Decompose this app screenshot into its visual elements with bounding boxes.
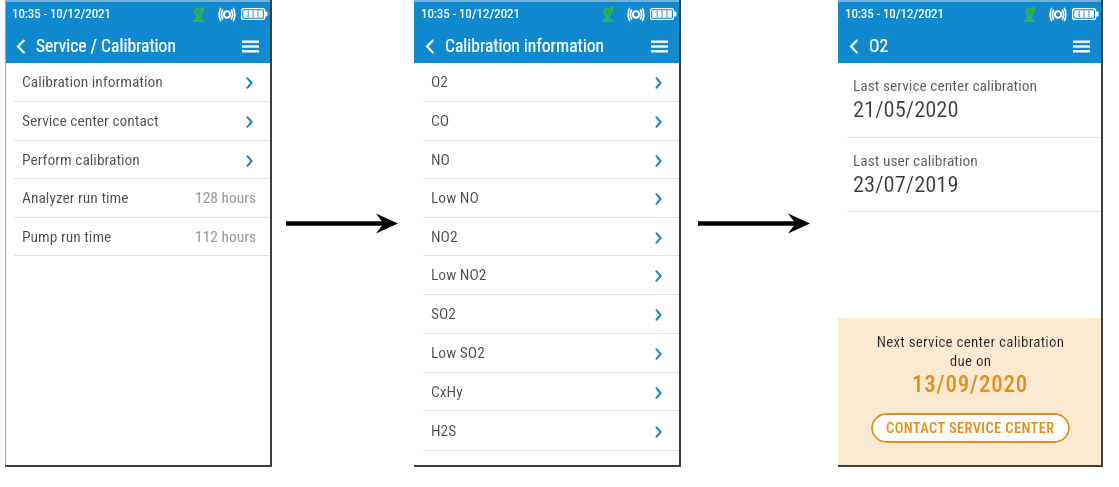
button[interactable]: NO bbox=[414, 141, 681, 178]
staticText: NO2 bbox=[431, 228, 458, 246]
staticText: Last service center calibration bbox=[853, 77, 1038, 95]
button[interactable]: CO bbox=[414, 102, 681, 140]
staticText: Analyzer run time bbox=[22, 189, 129, 207]
staticText: 10:35 - 10/12/2021 bbox=[845, 6, 944, 21]
staticText: Low NO bbox=[431, 189, 479, 207]
button[interactable]: Back bbox=[422, 36, 604, 57]
button[interactable]: Back bbox=[846, 36, 889, 57]
staticText: 21/05/2020 bbox=[853, 96, 959, 122]
button[interactable]: Perform calibration bbox=[5, 141, 272, 178]
staticText: Calibration information bbox=[22, 73, 163, 91]
button[interactable]: Menu bbox=[646, 33, 672, 59]
staticText: Perform calibration bbox=[22, 151, 140, 169]
staticText: CxHy bbox=[431, 383, 463, 401]
staticText: Service / Calibration bbox=[36, 36, 176, 57]
button[interactable]: Service center contact bbox=[5, 102, 272, 140]
staticText: O2 bbox=[869, 36, 889, 57]
button[interactable]: Analyzer run time bbox=[5, 179, 272, 217]
other: Back bbox=[846, 38, 862, 54]
other: Back bbox=[422, 38, 438, 54]
staticText: CONTACT SERVICE CENTER bbox=[886, 420, 1055, 437]
button[interactable]: H2S bbox=[414, 411, 681, 450]
staticText: 23/07/2019 bbox=[853, 171, 959, 197]
button[interactable]: Pump run time bbox=[5, 218, 272, 255]
staticText: 10:35 - 10/12/2021 bbox=[421, 6, 520, 21]
button[interactable]: CONTACT SERVICE CENTER bbox=[871, 413, 1070, 443]
staticText: Service center contact bbox=[22, 112, 159, 130]
button[interactable]: Low NO2 bbox=[414, 256, 681, 294]
button[interactable]: Menu bbox=[1068, 33, 1094, 59]
button[interactable]: Back bbox=[13, 36, 176, 57]
button[interactable]: SO2 bbox=[414, 295, 681, 333]
staticText: Last user calibration bbox=[853, 152, 978, 170]
button[interactable]: Calibration information bbox=[5, 63, 272, 101]
button[interactable]: O2 bbox=[414, 63, 681, 101]
staticText: Low SO2 bbox=[431, 344, 485, 362]
button[interactable]: Menu bbox=[237, 33, 263, 59]
staticText: 112 hours bbox=[195, 228, 257, 246]
button[interactable]: Low NO bbox=[414, 179, 681, 217]
staticText: CO bbox=[431, 112, 450, 130]
staticText: Calibration information bbox=[445, 36, 604, 57]
other: Back bbox=[13, 38, 29, 54]
staticText: Low NO2 bbox=[431, 266, 487, 284]
staticText: 13/09/2020 bbox=[912, 371, 1029, 398]
staticText: O2 bbox=[431, 73, 448, 91]
staticText: Pump run time bbox=[22, 228, 112, 246]
staticText: H2S bbox=[431, 422, 457, 440]
button[interactable]: NO2 bbox=[414, 218, 681, 255]
staticText: NO bbox=[431, 151, 450, 169]
staticText: Next service center calibration due on bbox=[848, 333, 1093, 370]
staticText: SO2 bbox=[431, 305, 457, 323]
button[interactable]: CxHy bbox=[414, 373, 681, 410]
staticText: 128 hours bbox=[195, 189, 257, 207]
staticText: 10:35 - 10/12/2021 bbox=[12, 6, 111, 21]
button[interactable]: Low SO2 bbox=[414, 334, 681, 372]
